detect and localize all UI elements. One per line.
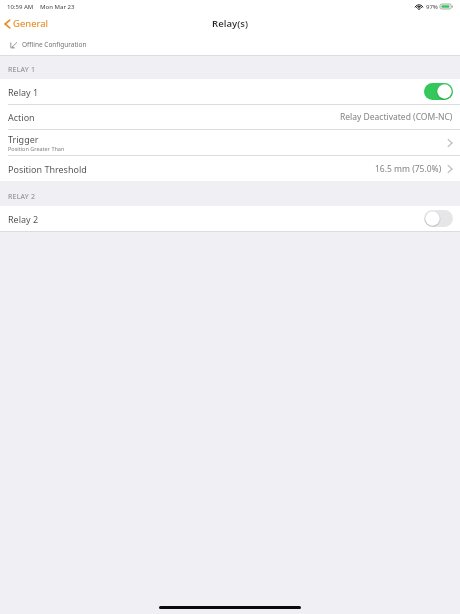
other: Edit offline configuration (10, 41, 18, 49)
staticText: Position Threshold (8, 163, 87, 175)
staticText: RELAY 2 (8, 192, 36, 202)
button[interactable]: Position Threshold (0, 156, 460, 181)
staticText: Relay Deactivated (COM-NC) (340, 111, 453, 123)
staticText: 97% (426, 3, 438, 11)
button[interactable]: Switch on (424, 83, 453, 100)
button[interactable]: General (4, 17, 138, 30)
button[interactable]: Edit offline configuration (10, 40, 87, 49)
staticText: Position Greater Than (8, 145, 65, 152)
staticText: Offline Configuration (22, 40, 87, 49)
staticText: Relay(s) (212, 17, 248, 30)
staticText: 16.5 mm (75.0%) (375, 163, 442, 175)
staticText: Trigger (8, 133, 39, 145)
staticText: General (13, 17, 49, 30)
staticText: 10:59 AM (7, 3, 34, 11)
staticText: Mon Mar 23 (40, 3, 75, 11)
button[interactable]: Trigger (0, 130, 460, 156)
button[interactable]: Action (0, 105, 460, 130)
staticText: Relay 1 (8, 86, 39, 98)
button[interactable]: Relay 2 (0, 206, 460, 231)
button[interactable]: Switch off (424, 210, 453, 227)
staticText: RELAY 1 (8, 65, 36, 75)
button[interactable]: Relay 1 (0, 79, 460, 105)
staticText: Relay 2 (8, 213, 39, 225)
staticText: Action (8, 111, 35, 123)
